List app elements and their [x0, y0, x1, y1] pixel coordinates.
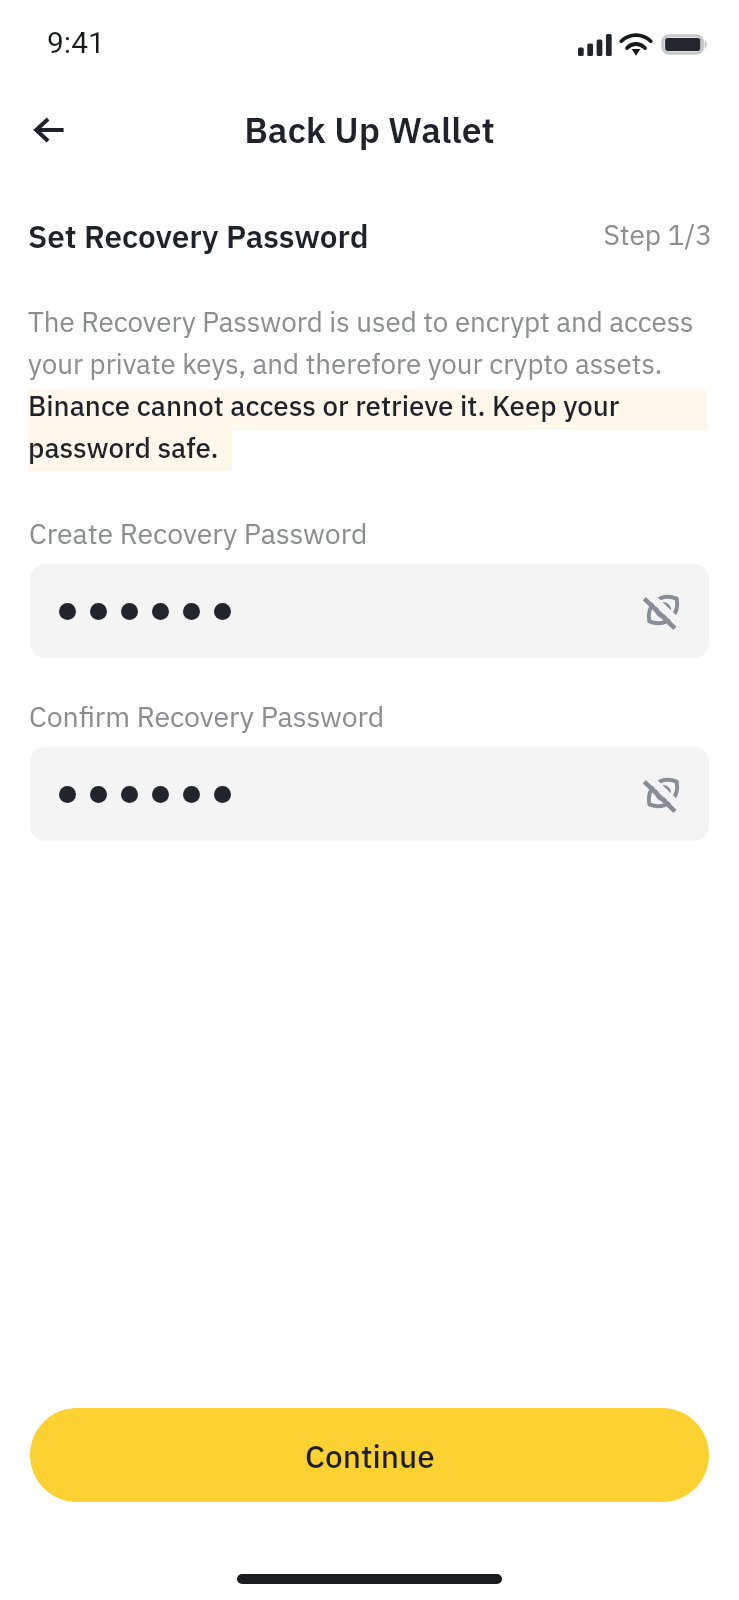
- button[interactable]: Toggle password visibility: [30, 747, 709, 841]
- staticText: Step 1/3: [0, 216, 712, 252]
- staticText: Continue: [305, 1436, 435, 1477]
- staticText: The Recovery Password is used to encrypt…: [28, 299, 710, 467]
- staticText: Back Up Wallet: [0, 107, 739, 153]
- button[interactable]: Toggle password visibility: [640, 587, 686, 633]
- staticText: Confirm Recovery Password: [29, 698, 385, 735]
- staticText: Create Recovery Password: [29, 515, 368, 552]
- button[interactable]: Toggle password visibility: [640, 770, 686, 816]
- staticText: 9:41: [47, 25, 105, 60]
- staticText: Set Recovery Password: [28, 216, 369, 257]
- button[interactable]: Back: [23, 104, 75, 156]
- button[interactable]: Toggle password visibility: [30, 564, 709, 658]
- button[interactable]: Continue: [30, 1408, 709, 1502]
